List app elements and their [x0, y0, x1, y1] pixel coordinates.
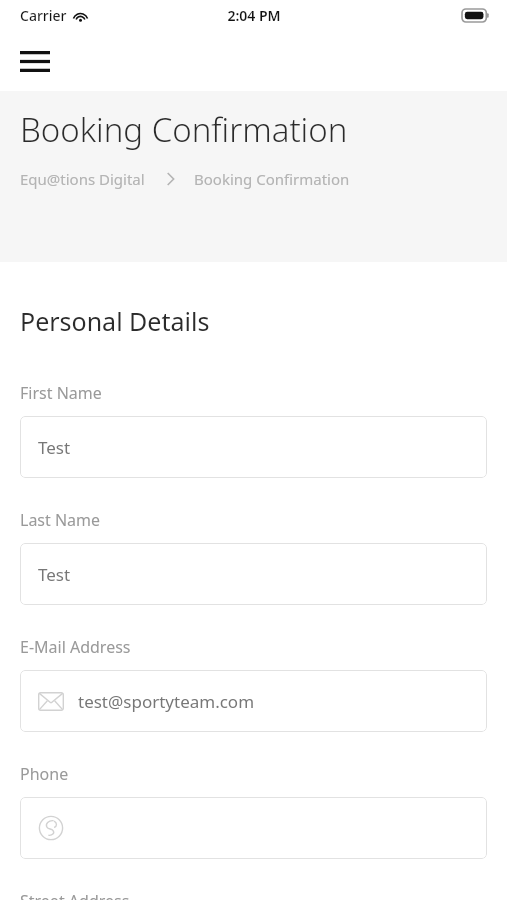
staticText: First Name: [20, 382, 102, 404]
staticText: Phone: [20, 763, 69, 785]
staticText: Last Name: [20, 509, 101, 531]
staticText: Carrier: [20, 6, 67, 25]
staticText: Booking Confirmation: [194, 169, 350, 189]
button[interactable]: Equ@tions Digital: [20, 169, 145, 189]
staticText: Street Address: [20, 890, 130, 900]
button[interactable]: Open navigation menu: [12, 38, 58, 84]
button[interactable]: test@sportyteam.com: [20, 670, 487, 732]
staticText: Personal Details: [20, 304, 210, 338]
staticText: Test: [38, 436, 71, 459]
staticText: Test: [38, 563, 71, 586]
staticText: Booking Confirmation: [20, 107, 348, 152]
staticText: 2:04 PM: [227, 6, 281, 25]
button[interactable]: Test: [20, 543, 487, 605]
staticText: test@sportyteam.com: [78, 690, 255, 713]
button[interactable]: Test: [20, 416, 487, 478]
staticText: Equ@tions Digital: [20, 169, 145, 189]
staticText: E-Mail Address: [20, 636, 131, 658]
button[interactable]: [20, 797, 487, 859]
